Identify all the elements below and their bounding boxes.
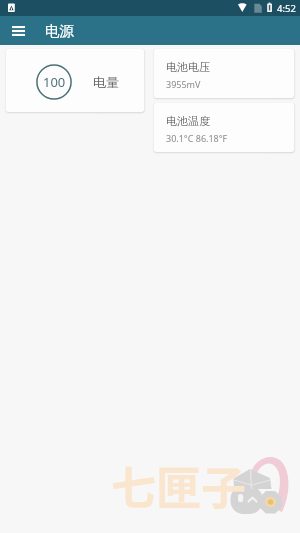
staticText: 电量	[93, 74, 119, 90]
staticText: 电源	[45, 22, 74, 40]
staticText: 七匣子	[111, 453, 247, 518]
button[interactable]: 电池电压	[154, 49, 294, 98]
staticText: 电池电压	[166, 60, 210, 74]
staticText: 30.1°C 86.18°F	[166, 132, 228, 144]
staticText: 100	[43, 73, 66, 91]
button[interactable]: 100	[6, 49, 144, 112]
button[interactable]: 电池温度	[154, 103, 294, 152]
staticText: 电池温度	[166, 114, 210, 128]
staticText: 3955mV	[166, 78, 201, 90]
staticText: 4:52	[277, 2, 296, 15]
button[interactable]: Open navigation menu	[0, 16, 36, 45]
